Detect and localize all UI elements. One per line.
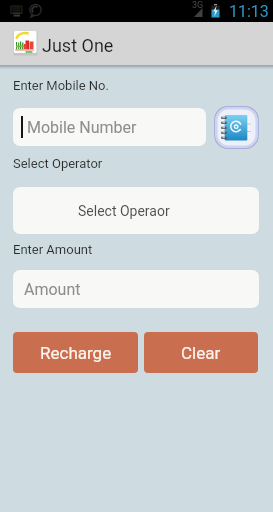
- staticText: Select Operator: [13, 156, 103, 171]
- staticText: Recharge: [40, 343, 112, 363]
- staticText: Enter Amount: [13, 242, 93, 257]
- staticText: Mobile Number: [27, 118, 137, 137]
- staticText: Just One: [42, 35, 114, 56]
- button[interactable]: Mobile Number: [13, 108, 206, 146]
- button[interactable]: Amount: [13, 270, 259, 308]
- staticText: 3G: [192, 0, 204, 11]
- staticText: Amount: [24, 280, 81, 299]
- button[interactable]: Select Operaor: [13, 187, 259, 234]
- staticText: Enter Mobile No.: [13, 78, 109, 93]
- staticText: Select Operaor: [78, 203, 170, 219]
- button[interactable]: Clear: [144, 332, 258, 373]
- button[interactable]: Recharge: [13, 332, 138, 373]
- staticText: Clear: [181, 343, 221, 363]
- button[interactable]: Pick contact: [214, 106, 259, 149]
- staticText: 11:13: [229, 2, 269, 21]
